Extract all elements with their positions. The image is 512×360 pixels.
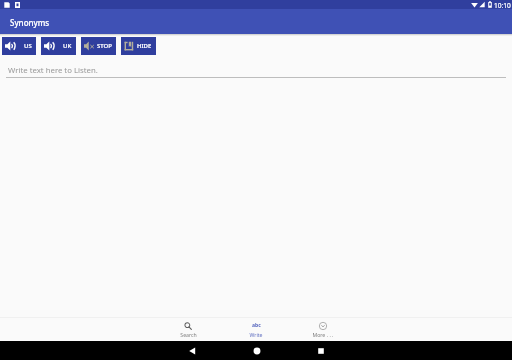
button[interactable]: abc [229, 318, 283, 341]
staticText: Search [180, 331, 197, 338]
staticText: Write text here to Listen. [8, 65, 98, 76]
button[interactable]: STOP [81, 37, 116, 55]
button[interactable]: Back [160, 341, 224, 360]
staticText: US [24, 42, 32, 50]
staticText: 10:10 [494, 1, 511, 10]
button[interactable]: US [2, 37, 36, 55]
button[interactable]: UK [41, 37, 76, 55]
staticText: Synonyms [10, 17, 50, 28]
button[interactable]: Home [225, 341, 289, 360]
button[interactable]: Search [161, 318, 215, 341]
button[interactable]: Write text here to Listen. [0, 65, 512, 78]
staticText: STOP [97, 42, 112, 50]
staticText: Write [249, 331, 263, 338]
staticText: UK [63, 42, 72, 50]
button[interactable]: Recents [289, 341, 353, 360]
button[interactable]: HIDE [121, 37, 156, 55]
button[interactable]: More . . . [296, 318, 350, 341]
staticText: HIDE [137, 42, 152, 50]
staticText: abc [252, 322, 261, 329]
staticText: More . . . [312, 331, 334, 338]
